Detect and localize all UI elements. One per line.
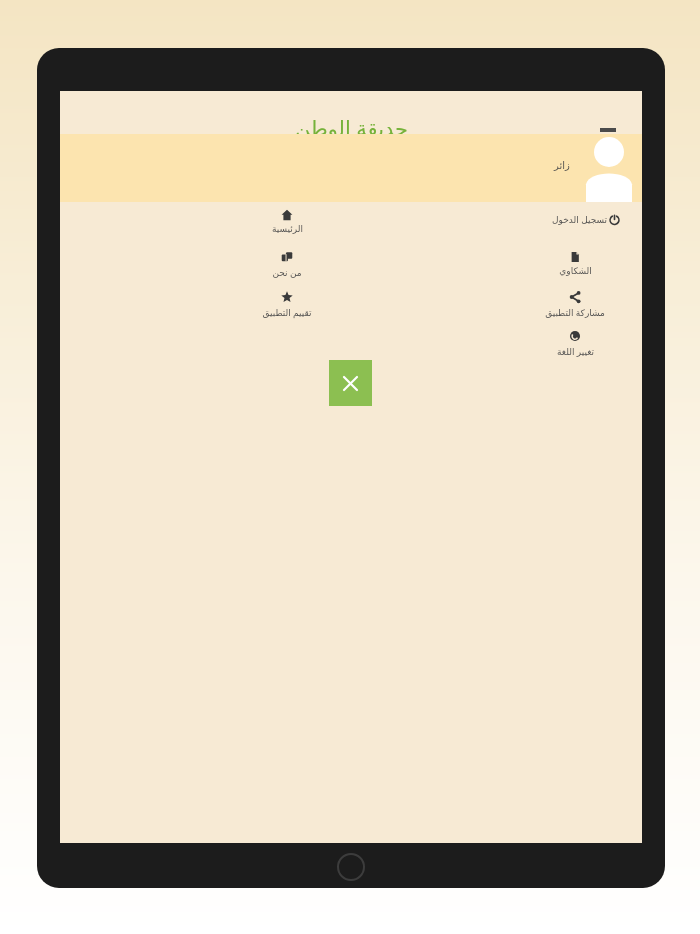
staticText: مشاركة التطبيق [545,306,605,318]
button[interactable]: Home [337,853,365,881]
staticText: تغيير اللغة [557,345,594,357]
staticText: الرئيسية [272,224,303,234]
button[interactable]: مشاركة التطبيق [530,291,620,318]
staticText: الشكاوي [559,266,592,276]
staticText: حديقة الوطن [295,114,408,143]
button[interactable]: Profile [584,134,634,202]
button[interactable]: من نحن [242,251,332,278]
staticText: تقييم التطبيق [262,306,312,318]
staticText: من نحن [272,266,302,278]
staticText: زائر [554,160,570,172]
button[interactable]: تقييم التطبيق [242,291,332,318]
staticText: تسجيل الدخول [552,213,607,225]
button[interactable]: تسجيل الدخول [530,209,620,229]
button[interactable]: حديقة الوطن [60,111,642,145]
button[interactable]: Close [329,360,372,406]
button[interactable]: تغيير اللغة [530,330,620,357]
button[interactable]: الرئيسية [242,209,332,234]
button[interactable]: الشكاوي [530,251,620,276]
